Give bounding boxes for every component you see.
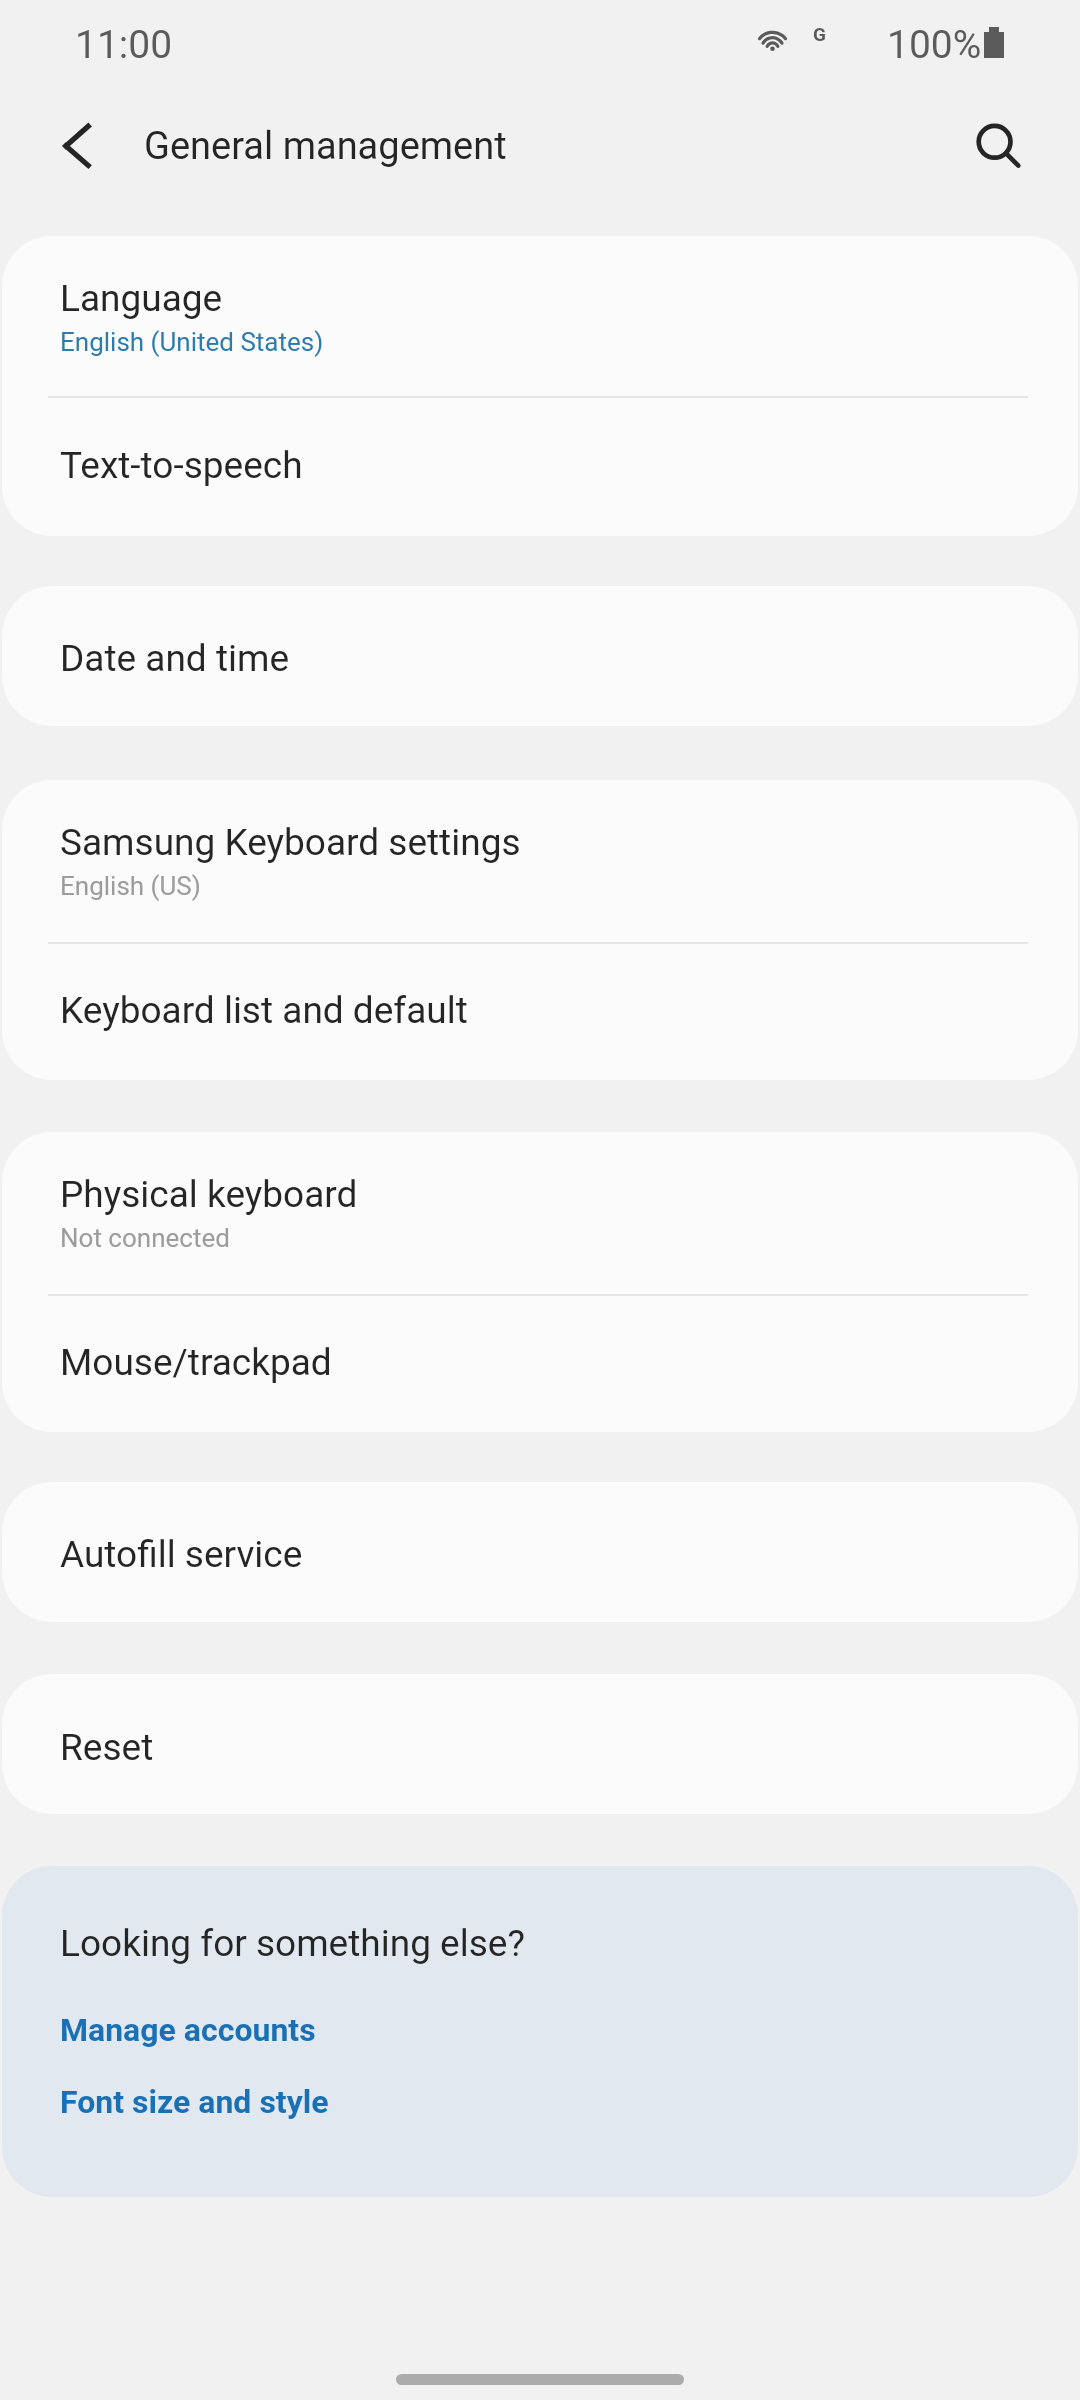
- staticText: Samsung Keyboard settings: [60, 821, 521, 864]
- staticText: Reset: [60, 1726, 154, 1769]
- button[interactable]: Back: [39, 108, 115, 184]
- button[interactable]: Mouse/trackpad: [2, 1296, 1078, 1432]
- button[interactable]: Physical keyboard: [2, 1132, 1078, 1294]
- button[interactable]: Reset: [2, 1674, 1078, 1814]
- staticText: English (United States): [60, 327, 324, 357]
- button[interactable]: Samsung Keyboard settings: [2, 780, 1078, 942]
- staticText: Text-to-speech: [60, 444, 303, 487]
- staticText: General management: [144, 124, 507, 169]
- staticText: English (US): [60, 871, 201, 901]
- staticText: Looking for something else?: [60, 1922, 525, 1965]
- staticText: 100%: [887, 22, 982, 68]
- staticText: Not connected: [60, 1223, 230, 1253]
- staticText: Physical keyboard: [60, 1173, 358, 1216]
- button[interactable]: Search: [958, 104, 1034, 180]
- staticText: Language: [60, 277, 223, 320]
- button[interactable]: Text-to-speech: [2, 398, 1078, 536]
- staticText: 11:00: [75, 22, 173, 68]
- staticText: Mouse/trackpad: [60, 1341, 332, 1384]
- button[interactable]: Autofill service: [2, 1482, 1078, 1622]
- staticText: Manage accounts: [60, 2011, 316, 2049]
- button[interactable]: Date and time: [2, 586, 1078, 726]
- staticText: Date and time: [60, 637, 290, 680]
- staticText: Font size and style: [60, 2083, 329, 2121]
- staticText: G: [813, 23, 826, 45]
- button[interactable]: Manage accounts: [60, 2011, 316, 2049]
- button[interactable]: Language: [2, 236, 1078, 396]
- staticText: Keyboard list and default: [60, 989, 468, 1032]
- staticText: Autofill service: [60, 1533, 303, 1576]
- button[interactable]: Font size and style: [60, 2083, 329, 2121]
- button[interactable]: Keyboard list and default: [2, 944, 1078, 1080]
